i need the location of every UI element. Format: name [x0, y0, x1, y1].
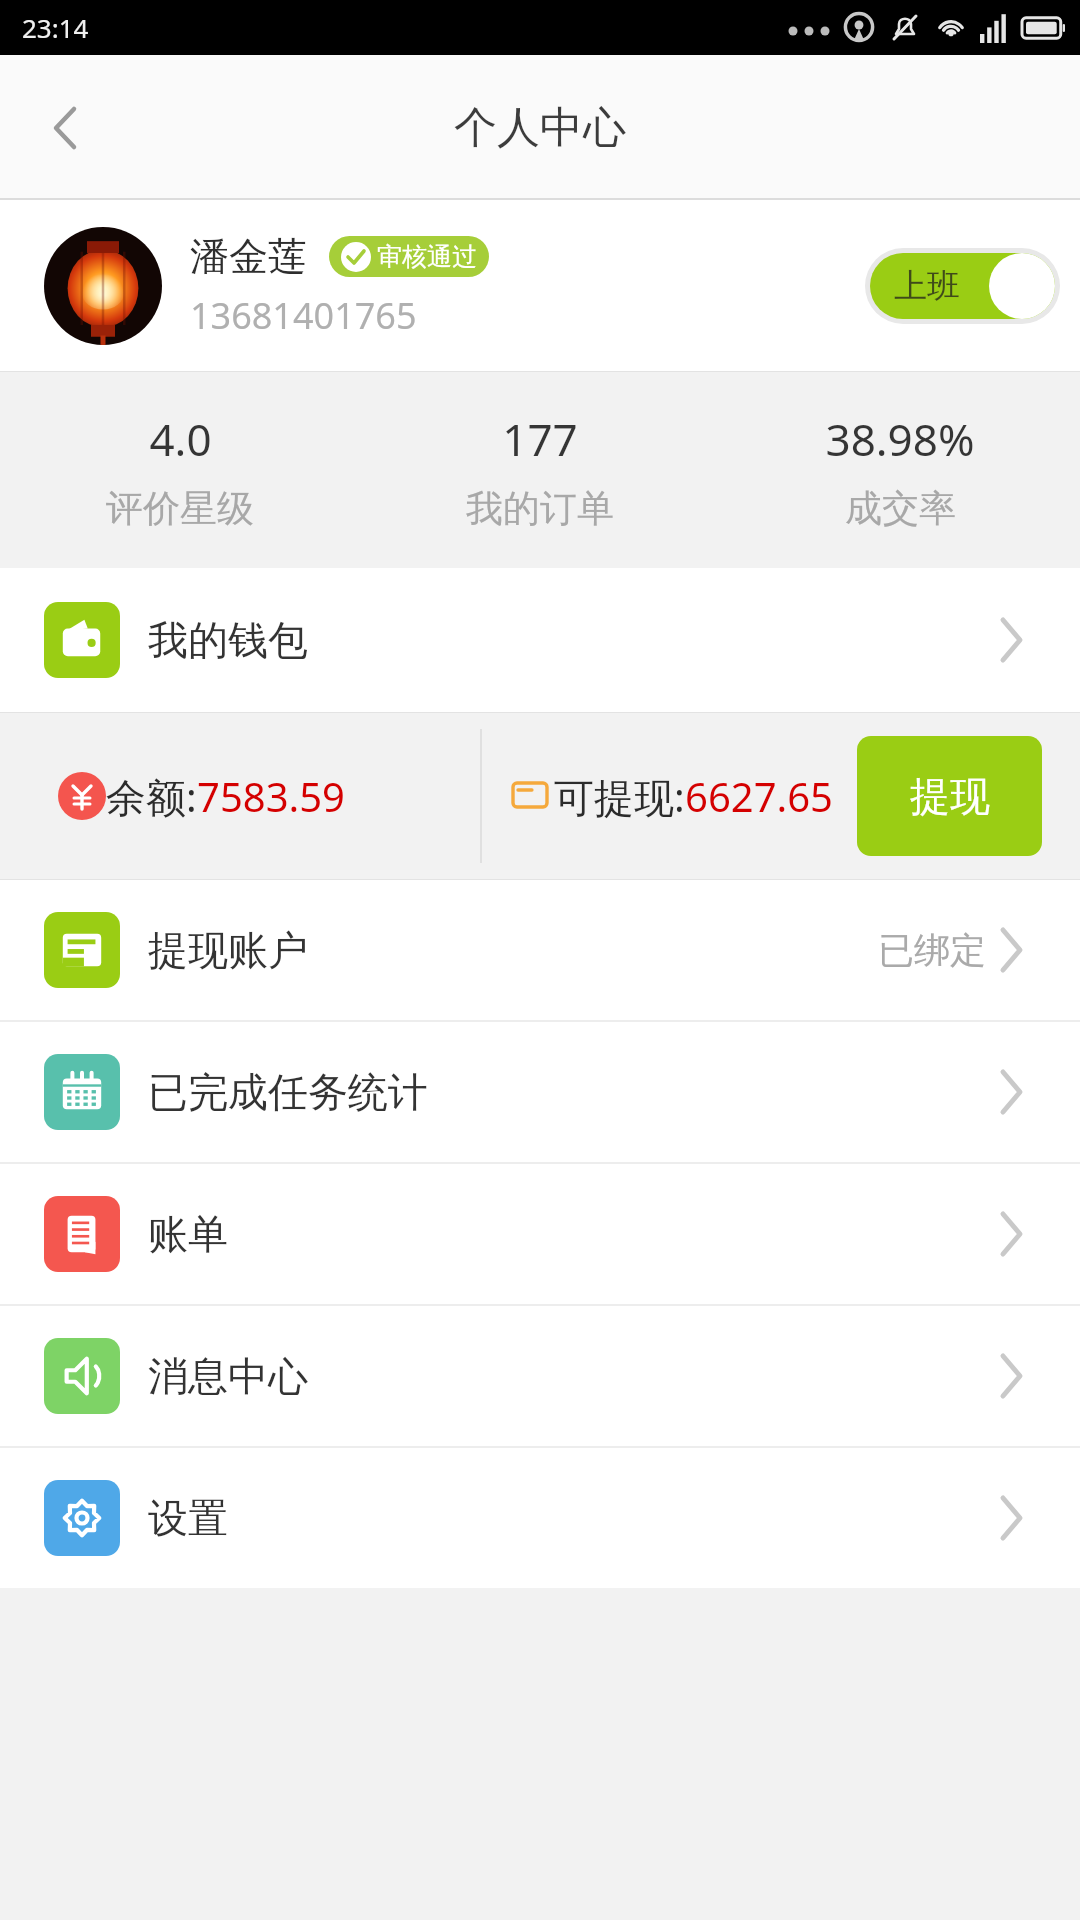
- staticText: 7583.59: [197, 769, 345, 823]
- button[interactable]: 177: [360, 409, 720, 532]
- staticText: 个人中心: [454, 101, 626, 155]
- button[interactable]: 已完成任务统计: [0, 1022, 1080, 1162]
- button[interactable]: 4.0: [0, 409, 360, 532]
- staticText: 提现账户: [148, 925, 308, 975]
- staticText: 6627.65: [685, 769, 833, 823]
- button[interactable]: 设置: [0, 1448, 1080, 1588]
- staticText: 审核通过: [377, 241, 477, 272]
- staticText: 潘金莲: [190, 232, 307, 281]
- staticText: 13681401765: [190, 291, 417, 340]
- staticText: 评价星级: [106, 485, 254, 532]
- staticText: 成交率: [845, 485, 956, 532]
- staticText: 消息中心: [148, 1351, 308, 1401]
- button[interactable]: 可提现:: [482, 712, 1080, 880]
- button[interactable]: 余额:: [0, 712, 480, 880]
- staticText: 账单: [148, 1209, 228, 1259]
- button[interactable]: 提现: [857, 736, 1042, 856]
- staticText: 我的订单: [466, 485, 614, 532]
- staticText: 上班: [894, 265, 960, 307]
- button[interactable]: 账单: [0, 1164, 1080, 1304]
- staticText: 已完成任务统计: [148, 1067, 428, 1117]
- staticText: 38.98%: [825, 409, 975, 469]
- staticText: 余额:: [106, 769, 197, 824]
- staticText: 23:14: [22, 10, 89, 45]
- button[interactable]: 消息中心: [0, 1306, 1080, 1446]
- button[interactable]: 38.98%: [720, 409, 1080, 532]
- staticText: 提现: [910, 771, 990, 821]
- staticText: 已绑定: [878, 928, 986, 973]
- staticText: 177: [502, 409, 578, 469]
- button[interactable]: 提现账户: [0, 880, 1080, 1020]
- staticText: 设置: [148, 1493, 228, 1543]
- button[interactable]: 上班: [865, 248, 1060, 324]
- button[interactable]: Back: [0, 55, 130, 200]
- staticText: 我的钱包: [148, 615, 308, 665]
- button[interactable]: 我的钱包: [0, 568, 1080, 712]
- staticText: 可提现:: [554, 769, 685, 824]
- staticText: 4.0: [149, 409, 212, 469]
